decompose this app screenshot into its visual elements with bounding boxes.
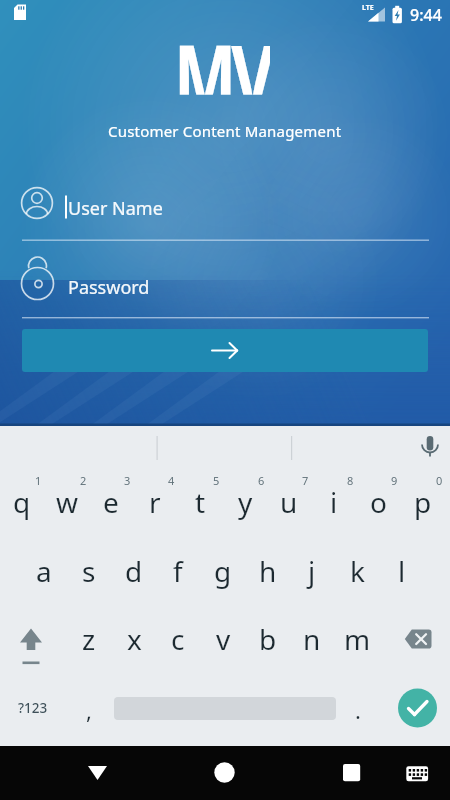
staticText: 9 [391, 473, 398, 488]
button[interactable]: n [290, 612, 334, 666]
button[interactable]: v [201, 612, 245, 666]
staticText: w [56, 483, 79, 521]
staticText: y [238, 483, 253, 521]
button[interactable]: w [45, 475, 89, 529]
staticText: x [127, 620, 142, 658]
staticText: 8 [347, 473, 354, 488]
staticText: Customer Content Management [108, 121, 342, 141]
staticText: . [355, 695, 361, 725]
button[interactable]: g [201, 544, 245, 598]
staticText: g [214, 552, 232, 590]
button[interactable]: l [380, 544, 424, 598]
staticText: 2 [80, 473, 87, 488]
button[interactable]: q [0, 475, 44, 529]
staticText: j [308, 552, 316, 590]
staticText: p [414, 483, 432, 521]
button[interactable]: ?123 [11, 681, 55, 735]
button[interactable]: b [246, 612, 290, 666]
button[interactable] [398, 688, 438, 728]
button[interactable] [396, 613, 440, 667]
button[interactable] [9, 613, 53, 667]
staticText: u [280, 483, 298, 521]
staticText: ?123 [18, 699, 48, 717]
button[interactable] [329, 746, 375, 800]
button[interactable]: c [156, 612, 200, 666]
staticText: 3 [124, 473, 131, 488]
button[interactable]: t [178, 475, 222, 529]
staticText: d [125, 552, 143, 590]
staticText: e [103, 483, 119, 521]
staticText: t [195, 483, 206, 521]
staticText: 9:44 [410, 4, 442, 26]
staticText: i [330, 483, 338, 521]
button[interactable]: x [112, 612, 156, 666]
staticText: 1 [35, 473, 42, 488]
button[interactable]: User Name [22, 185, 429, 240]
button[interactable] [399, 746, 437, 800]
staticText: LTE [362, 3, 374, 13]
staticText: 6 [258, 473, 265, 488]
button[interactable]: s [67, 544, 111, 598]
button[interactable]: a [22, 544, 66, 598]
staticText: z [82, 620, 96, 658]
staticText: 5 [213, 473, 220, 488]
staticText: n [303, 620, 321, 658]
button[interactable]: , [67, 683, 111, 737]
button[interactable]: d [112, 544, 156, 598]
staticText: 7 [302, 473, 309, 488]
staticText: MV [174, 13, 270, 95]
button[interactable]: Password [22, 263, 429, 317]
button[interactable] [408, 426, 450, 464]
staticText: a [36, 552, 52, 590]
button[interactable]: e [89, 475, 133, 529]
button[interactable]: . [336, 683, 380, 737]
staticText: 4 [168, 473, 175, 488]
staticText: Password [68, 275, 150, 300]
button[interactable]: k [335, 544, 379, 598]
staticText: k [350, 552, 365, 590]
button[interactable]: h [246, 544, 290, 598]
staticText: User Name [68, 196, 163, 221]
button[interactable] [22, 329, 428, 372]
button[interactable]: o [356, 475, 400, 529]
staticText: q [13, 483, 31, 521]
staticText: f [173, 552, 183, 590]
button[interactable]: j [290, 544, 334, 598]
button[interactable]: y [223, 475, 267, 529]
button[interactable]: i [312, 475, 356, 529]
button[interactable]: f [156, 544, 200, 598]
staticText: m [344, 620, 371, 658]
button[interactable]: p [401, 475, 445, 529]
button[interactable] [202, 746, 248, 800]
button[interactable] [75, 746, 121, 800]
staticText: l [398, 552, 406, 590]
button[interactable]: z [67, 612, 111, 666]
staticText: 0 [436, 473, 443, 488]
button[interactable]: u [267, 475, 311, 529]
staticText: r [149, 483, 161, 521]
staticText: b [259, 620, 277, 658]
staticText: v [216, 620, 231, 658]
staticText: s [82, 552, 96, 590]
staticText: h [259, 552, 277, 590]
button[interactable]: r [133, 475, 177, 529]
staticText: c [171, 620, 185, 658]
staticText: , [86, 695, 92, 725]
button[interactable]: m [335, 612, 379, 666]
staticText: o [370, 483, 387, 521]
